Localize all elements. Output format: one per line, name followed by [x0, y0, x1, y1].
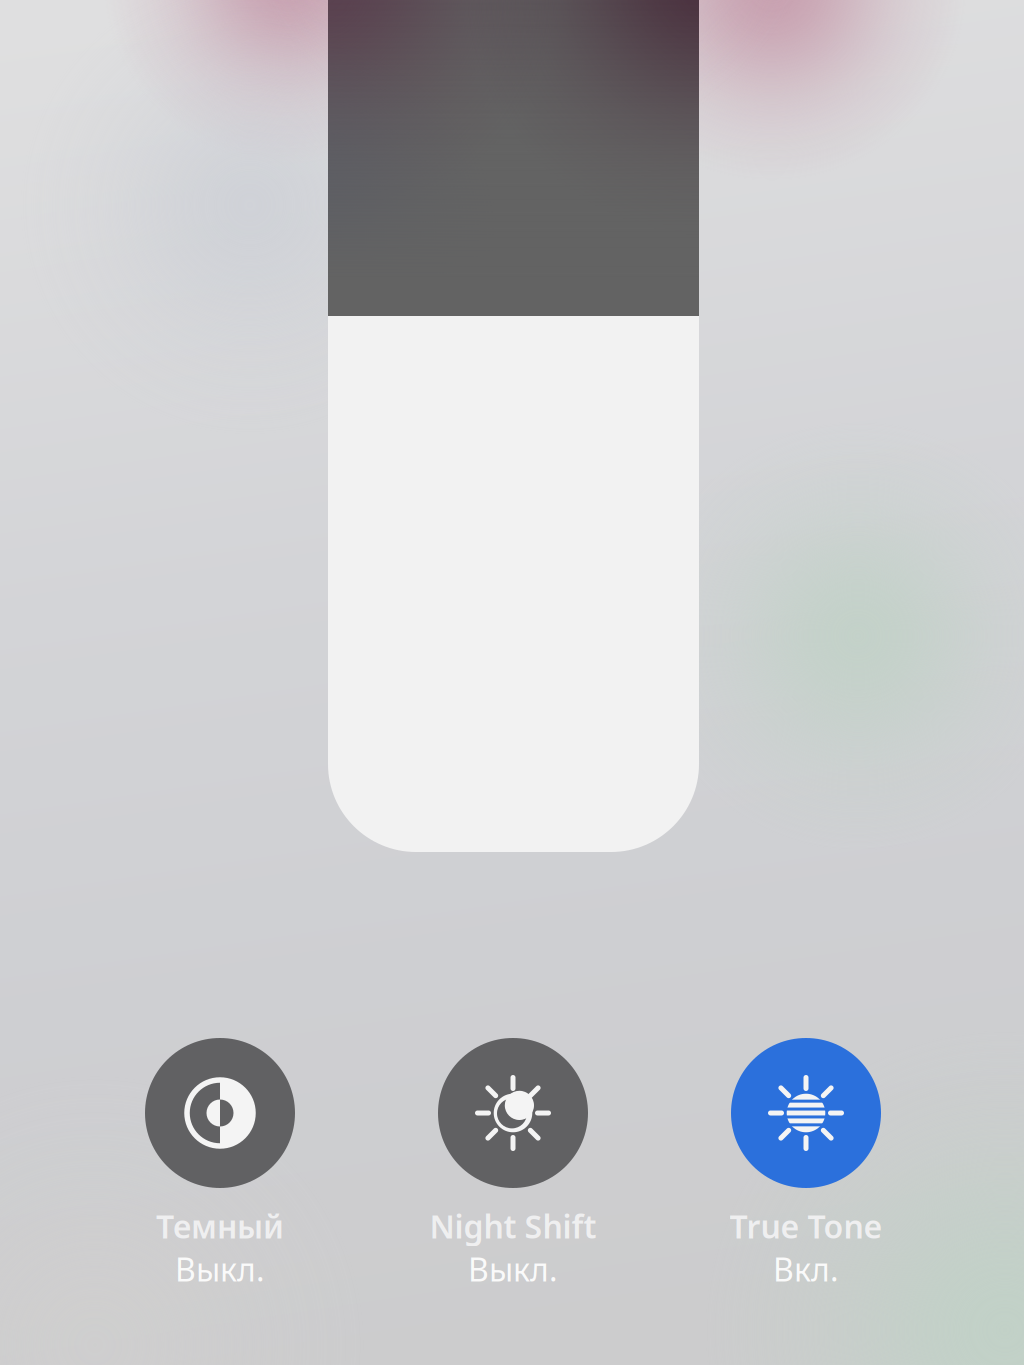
staticText: Вкл. [773, 1248, 839, 1290]
staticText: Выкл. [468, 1248, 558, 1290]
staticText: Темный [156, 1205, 284, 1247]
button[interactable]: Brightness [328, 0, 699, 852]
staticText: True Tone [729, 1205, 882, 1247]
button[interactable]: Night Shift [0, 0, 1024, 1365]
staticText: Выкл. [175, 1248, 265, 1290]
button[interactable]: True Tone [0, 0, 1024, 1365]
button[interactable]: Темный [0, 0, 1024, 1365]
staticText: Night Shift [429, 1205, 596, 1247]
